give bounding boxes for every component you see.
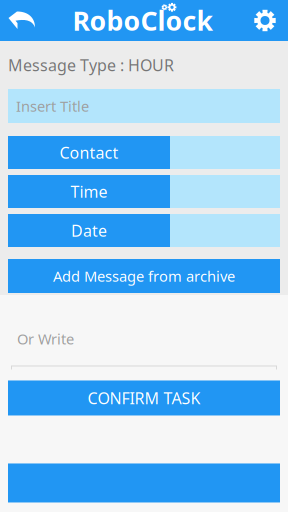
staticText: Time — [70, 181, 107, 202]
button[interactable]: Settings — [242, 0, 288, 41]
staticText: Or Write — [17, 329, 74, 348]
button[interactable]: Date — [8, 214, 170, 247]
staticText: Message Type : HOUR — [8, 54, 174, 76]
button[interactable]: CONFIRM TASK — [8, 380, 280, 415]
button[interactable]: Contact — [8, 136, 170, 169]
staticText: Insert Title — [16, 96, 89, 116]
staticText: Add Message from archive — [53, 266, 235, 286]
staticText: Contact — [59, 142, 118, 163]
button[interactable]: Back — [0, 0, 44, 41]
staticText: RoboClock — [72, 3, 213, 38]
button[interactable]: Add Message from archive — [8, 259, 280, 293]
staticText: Date — [71, 220, 107, 241]
staticText: CONFIRM TASK — [87, 387, 200, 409]
button[interactable]: Time — [8, 175, 170, 208]
